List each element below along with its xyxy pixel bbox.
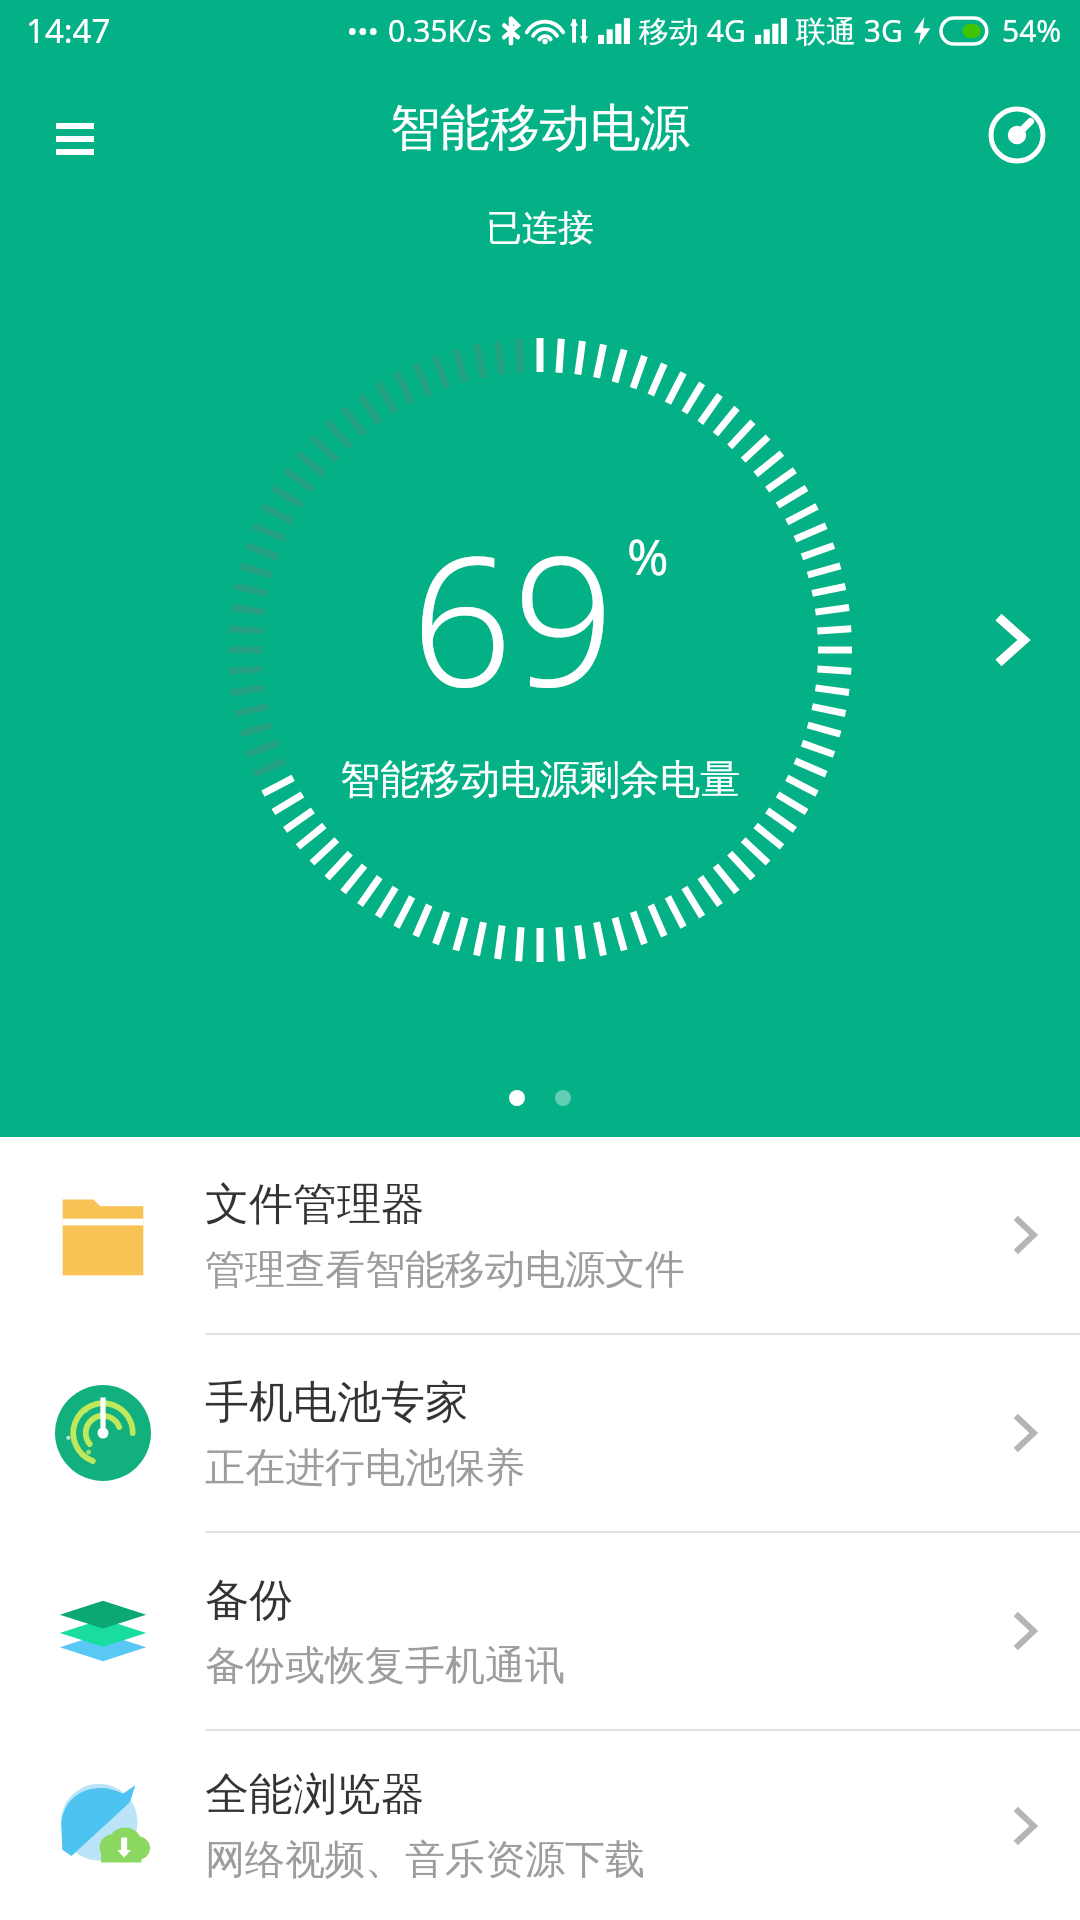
button[interactable]: 备份 bbox=[0, 1533, 1080, 1731]
staticText: 备份或恢复手机通讯 bbox=[205, 1640, 565, 1690]
staticText: 全能浏览器 bbox=[205, 1767, 425, 1822]
button[interactable]: 手机电池专家 bbox=[0, 1335, 1080, 1533]
staticText: 已连接 bbox=[486, 205, 594, 250]
staticText: 智能移动电源剩余电量 bbox=[340, 754, 740, 804]
button[interactable]: 文件管理器 bbox=[0, 1137, 1080, 1335]
staticText: 网络视频、音乐资源下载 bbox=[205, 1834, 645, 1884]
staticText: 14:47 bbox=[26, 8, 111, 53]
button[interactable]: Next bbox=[952, 580, 1072, 700]
staticText: 移动 4G bbox=[639, 10, 746, 51]
staticText: % bbox=[627, 522, 669, 590]
staticText: 文件管理器 bbox=[205, 1177, 425, 1232]
staticText: 管理查看智能移动电源文件 bbox=[205, 1244, 685, 1294]
button[interactable]: Device status bbox=[972, 90, 1062, 180]
staticText: 69 bbox=[411, 496, 615, 738]
staticText: 54% bbox=[1002, 10, 1062, 51]
button[interactable]: 全能浏览器 bbox=[0, 1731, 1080, 1920]
staticText: 智能移动电源 bbox=[390, 97, 690, 160]
staticText: 联通 3G bbox=[796, 10, 903, 51]
staticText: 正在进行电池保养 bbox=[205, 1442, 525, 1492]
button[interactable]: Menu bbox=[30, 90, 120, 180]
staticText: 备份 bbox=[205, 1573, 293, 1628]
staticText: 手机电池专家 bbox=[205, 1375, 469, 1430]
staticText: 0.35K/s bbox=[388, 10, 492, 51]
staticText: ••• bbox=[347, 12, 379, 50]
